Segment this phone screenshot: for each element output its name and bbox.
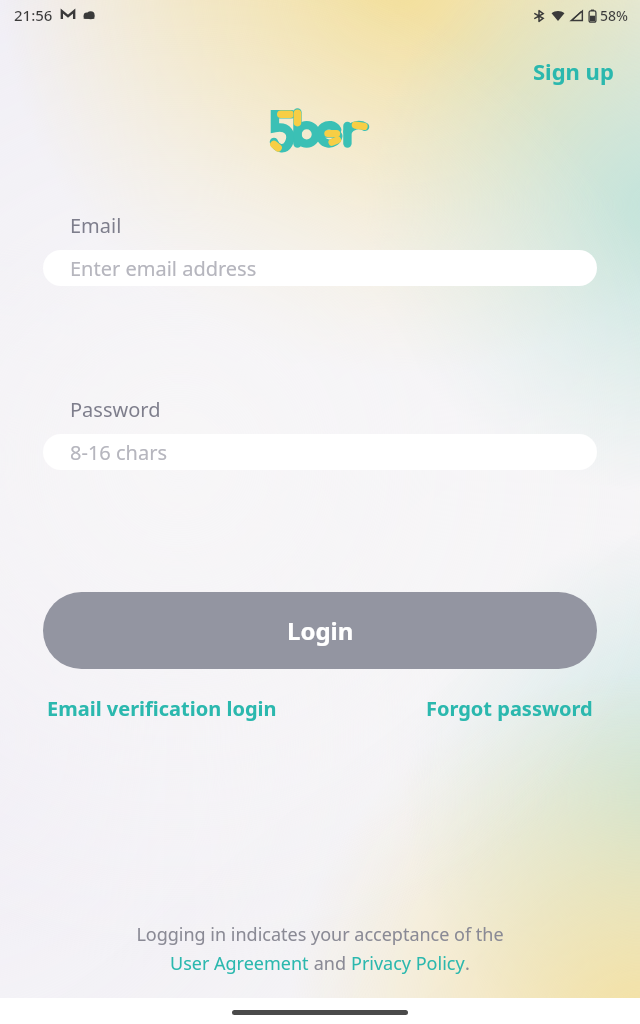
- button[interactable]: User Agreement: [170, 951, 309, 976]
- button[interactable]: Sign up: [521, 50, 626, 92]
- staticText: Logging in indicates your acceptance of …: [136, 922, 504, 947]
- staticText: Password: [70, 396, 161, 423]
- staticText: Sign up: [533, 56, 614, 86]
- staticText: Email: [70, 212, 122, 239]
- staticText: Email verification login: [47, 695, 277, 722]
- staticText: and: [309, 951, 351, 976]
- button[interactable]: Email verification login: [43, 687, 281, 730]
- button[interactable]: Privacy Policy: [351, 951, 465, 976]
- staticText: 58%: [600, 6, 628, 25]
- staticText: Login: [287, 614, 354, 647]
- staticText: User Agreement: [170, 951, 309, 976]
- button[interactable]: Forgot password: [422, 687, 597, 730]
- staticText: Privacy Policy: [351, 951, 465, 976]
- button[interactable]: Enter email address: [43, 250, 597, 286]
- staticText: Forgot password: [426, 695, 593, 722]
- staticText: .: [465, 951, 470, 976]
- staticText: 8-16 chars: [70, 439, 167, 466]
- button[interactable]: 8-16 chars: [43, 434, 597, 470]
- staticText: Enter email address: [70, 255, 257, 282]
- staticText: 21:56: [14, 5, 53, 25]
- button[interactable]: Login: [43, 592, 597, 669]
